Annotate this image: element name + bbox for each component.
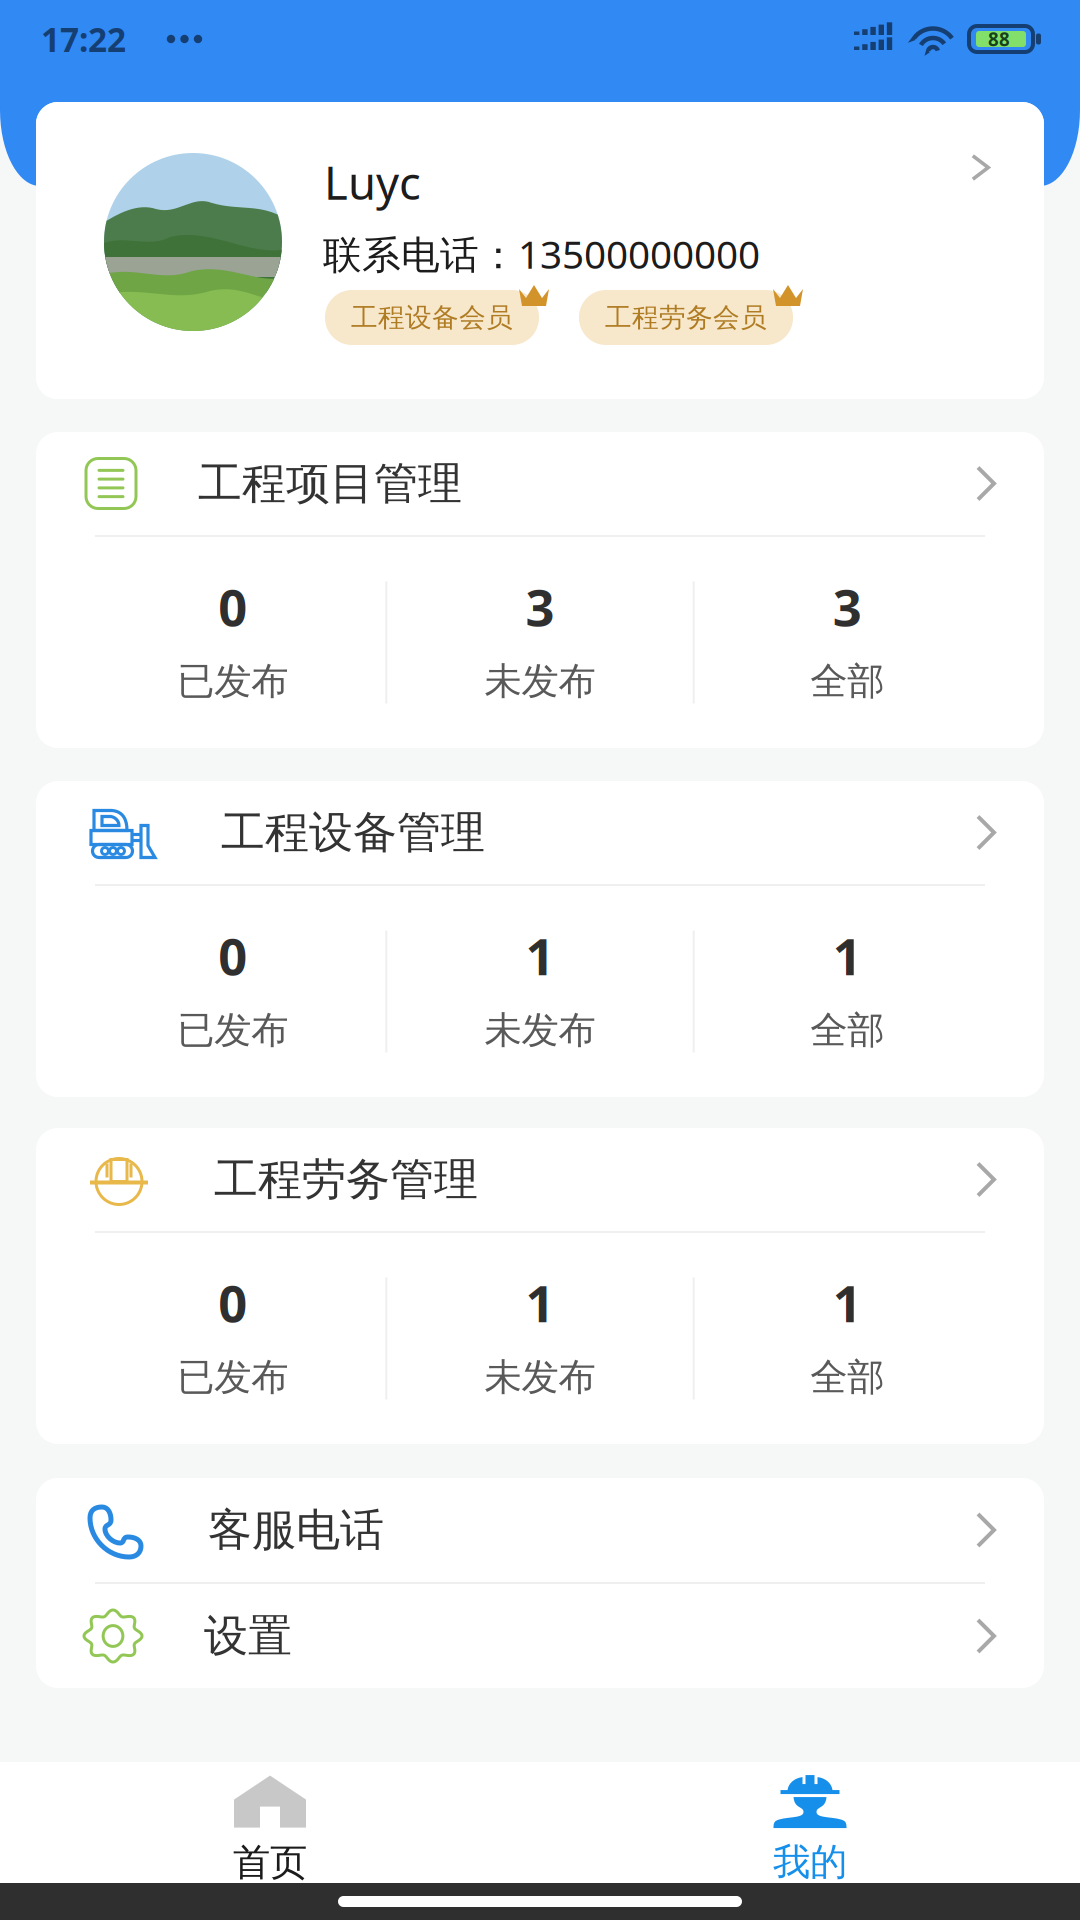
staticText: 客服电话 <box>208 1503 384 1557</box>
staticText: Luyc <box>324 152 421 212</box>
staticText: 未发布 <box>484 658 595 704</box>
staticText: 0 <box>218 922 247 989</box>
button[interactable]: 首页 <box>0 1762 540 1883</box>
button[interactable]: 客服电话 <box>36 1478 1044 1582</box>
staticText: 88 <box>988 27 1010 51</box>
staticText: 0 <box>218 1269 247 1336</box>
button[interactable]: 工程项目管理 <box>36 432 1044 535</box>
staticText: 3 <box>525 573 554 640</box>
button[interactable]: Luyc <box>36 102 1044 399</box>
staticText: 1 <box>833 1269 862 1336</box>
button[interactable]: 工程设备管理 <box>36 781 1044 884</box>
staticText: 设置 <box>204 1609 292 1663</box>
staticText: 17:22 <box>41 17 126 61</box>
staticText: 已发布 <box>177 658 288 704</box>
staticText: 工程劳务会员 <box>605 301 767 334</box>
staticText: 0 <box>218 573 247 640</box>
staticText: 1 <box>525 922 554 989</box>
staticText: 工程设备会员 <box>351 301 513 334</box>
button[interactable]: 设置 <box>36 1584 1044 1688</box>
staticText: 工程劳务管理 <box>214 1152 478 1206</box>
staticText: 全部 <box>810 658 884 704</box>
staticText: 3 <box>833 573 862 640</box>
staticText: 首页 <box>233 1840 307 1885</box>
staticText: 已发布 <box>177 1354 288 1400</box>
button[interactable]: 我的 <box>540 1762 1080 1883</box>
staticText: 已发布 <box>177 1007 288 1053</box>
staticText: 1 <box>525 1269 554 1336</box>
staticText: 未发布 <box>484 1354 595 1400</box>
staticText: 未发布 <box>484 1007 595 1053</box>
staticText: 工程设备管理 <box>221 805 485 859</box>
staticText: 工程项目管理 <box>198 456 462 510</box>
staticText: 全部 <box>810 1007 884 1053</box>
staticText: 我的 <box>773 1839 847 1885</box>
staticText: 联系电话：13500000000 <box>323 228 760 279</box>
staticText: 1 <box>833 922 862 989</box>
staticText: 全部 <box>810 1354 884 1400</box>
button[interactable]: 工程劳务管理 <box>36 1128 1044 1231</box>
